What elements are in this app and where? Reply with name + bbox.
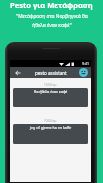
button[interactable]: Assistant avatar xyxy=(79,68,88,77)
staticText: pesto assistant xyxy=(35,70,67,76)
staticText: Pesto για Μετάφραση xyxy=(10,0,93,10)
staticText: 9:41 xyxy=(82,61,89,66)
staticText: "Μετάφραση στα Νορβηγικά θα ήθελα έναν κ… xyxy=(16,13,88,29)
staticText: 10:04 πμ xyxy=(44,119,57,123)
staticText: jeg vil gjerne ha en kaffe xyxy=(30,125,72,130)
button[interactable]: jeg vil gjerne ha en kaffe xyxy=(13,124,88,144)
button[interactable]: Back xyxy=(13,68,22,77)
button[interactable]: θα ήθελα έναν καφέ xyxy=(13,88,88,107)
staticText: θα ήθελα έναν καφέ xyxy=(34,89,68,94)
staticText: 10:04 πμ xyxy=(44,83,57,87)
